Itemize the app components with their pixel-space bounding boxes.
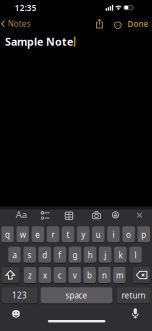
staticText: h (88, 250, 93, 260)
button[interactable]: u (92, 226, 105, 242)
button[interactable]: k (114, 247, 127, 263)
staticText: w (20, 229, 26, 240)
button[interactable]: s (23, 247, 36, 263)
staticText: z (28, 270, 32, 281)
staticText: y (81, 229, 85, 240)
staticText: t (67, 229, 70, 240)
button[interactable]: e (31, 226, 44, 242)
button[interactable]: Emoji (12, 310, 20, 318)
button[interactable]: j (99, 247, 112, 263)
button[interactable]: Delete (133, 267, 150, 283)
staticText: e (35, 229, 40, 240)
button[interactable]: q (1, 226, 14, 242)
button[interactable]: o (122, 226, 135, 242)
button[interactable]: More (114, 21, 122, 29)
button[interactable]: v (68, 267, 81, 283)
button[interactable]: Table (65, 212, 73, 220)
staticText: x (43, 270, 47, 281)
staticText: a (12, 250, 16, 260)
staticText: space (65, 290, 87, 301)
button[interactable]: y (77, 226, 89, 242)
staticText: 123 (12, 290, 27, 301)
staticText: b (87, 270, 92, 281)
button[interactable]: Dismiss (137, 212, 142, 218)
button[interactable]: d (38, 247, 51, 263)
staticText: Sample Note (5, 34, 73, 49)
button[interactable]: Share (95, 19, 103, 29)
staticText: i (112, 229, 114, 240)
staticText: p (141, 229, 146, 240)
staticText: 12:35 (15, 2, 37, 13)
button[interactable]: l (129, 247, 142, 263)
button[interactable]: w (16, 226, 29, 242)
staticText: k (118, 250, 122, 260)
button[interactable]: m (113, 267, 126, 283)
staticText: Aa (16, 208, 27, 221)
button[interactable]: Shift (2, 267, 19, 283)
staticText: q (5, 229, 10, 240)
button[interactable]: Dictate (132, 308, 139, 318)
button[interactable]: c (53, 267, 66, 283)
button[interactable]: Checklist (41, 211, 50, 220)
button[interactable]: f (54, 247, 66, 263)
button[interactable]: space (41, 287, 112, 303)
staticText: c (58, 270, 62, 281)
staticText: u (96, 229, 101, 240)
staticText: m (116, 270, 123, 281)
button[interactable]: h (84, 247, 96, 263)
staticText: Notes (8, 18, 31, 29)
button[interactable]: x (39, 267, 51, 283)
staticText: f (58, 250, 61, 260)
button[interactable]: p (137, 226, 150, 242)
staticText: l (134, 250, 136, 260)
staticText: Done (127, 19, 148, 29)
button[interactable]: Done (127, 19, 148, 29)
button[interactable]: Numbers (2, 287, 37, 303)
staticText: v (73, 270, 77, 281)
button[interactable]: Markup (112, 211, 119, 218)
staticText: n (102, 270, 107, 281)
staticText: j (104, 250, 106, 260)
button[interactable]: t (62, 226, 74, 242)
button[interactable]: a (8, 247, 21, 263)
button[interactable]: return (116, 287, 150, 303)
staticText: s (28, 250, 32, 260)
button[interactable]: i (107, 226, 120, 242)
button[interactable]: b (83, 267, 96, 283)
staticText: g (72, 250, 77, 260)
staticText: o (126, 229, 131, 240)
staticText: r (51, 229, 54, 240)
button[interactable]: n (98, 267, 111, 283)
staticText: d (42, 250, 47, 260)
button[interactable]: r (47, 226, 59, 242)
button[interactable]: Format (14, 208, 28, 220)
button[interactable]: z (24, 267, 36, 283)
staticText: return (121, 290, 145, 301)
button[interactable]: Camera (92, 211, 101, 219)
button[interactable]: Notes (1, 18, 31, 30)
button[interactable]: g (69, 247, 81, 263)
